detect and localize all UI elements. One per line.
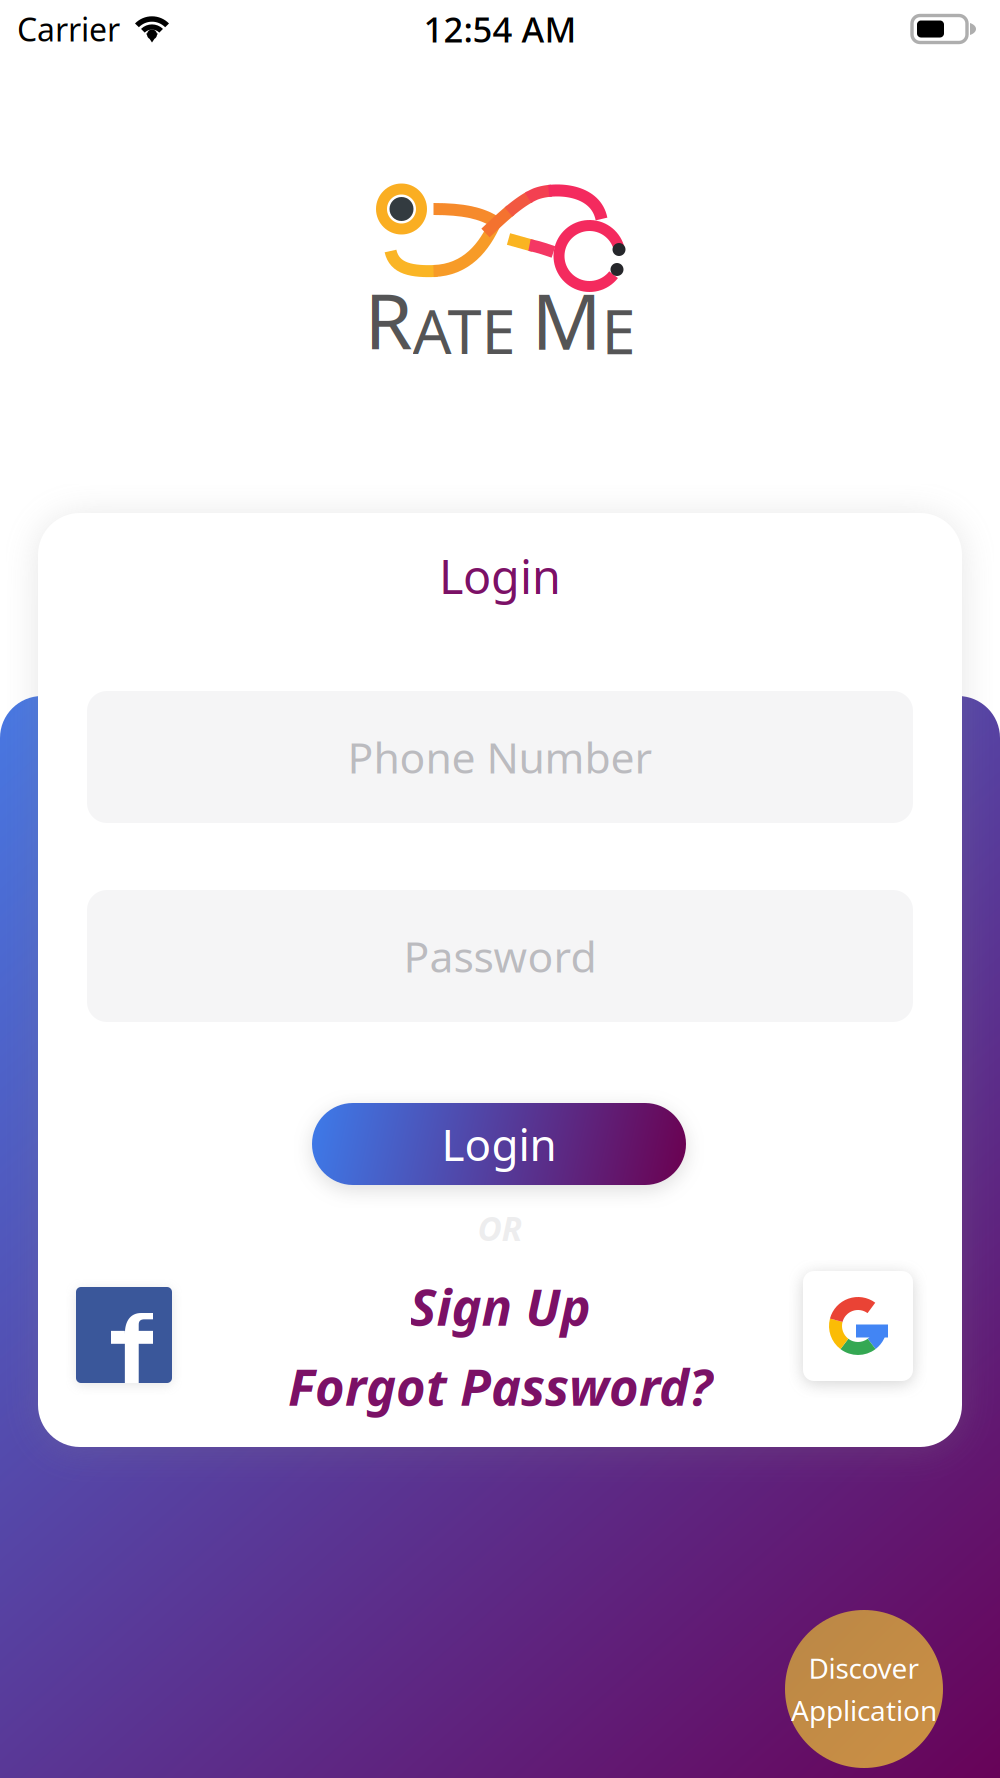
staticText: Application [791,1691,937,1729]
staticText: Forgot Password? [288,1351,712,1420]
staticText: Login [441,1114,556,1174]
staticText: 12:54 AM [423,5,576,53]
staticText: OR [477,1205,522,1251]
button[interactable]: Forgot Password? [200,1357,800,1415]
staticText: Login [439,544,561,608]
staticText: E [601,289,635,372]
button[interactable]: Discover [749,1610,979,1768]
staticText: M [531,267,601,372]
button[interactable]: Sign in with Google [803,1271,913,1381]
staticText: Discover [808,1649,919,1687]
staticText: Carrier [17,7,120,51]
button[interactable]: Login [312,1103,686,1185]
staticText: R [364,267,412,372]
staticText: Sign Up [409,1271,590,1340]
button[interactable]: Sign Up [200,1277,800,1335]
button[interactable]: Password [87,890,913,1022]
staticText: Phone Number [347,728,652,786]
staticText: Password [403,927,596,985]
staticText: ATE [412,289,515,372]
button[interactable]: Sign in with Facebook [76,1287,172,1383]
button[interactable]: Phone Number [87,691,913,823]
